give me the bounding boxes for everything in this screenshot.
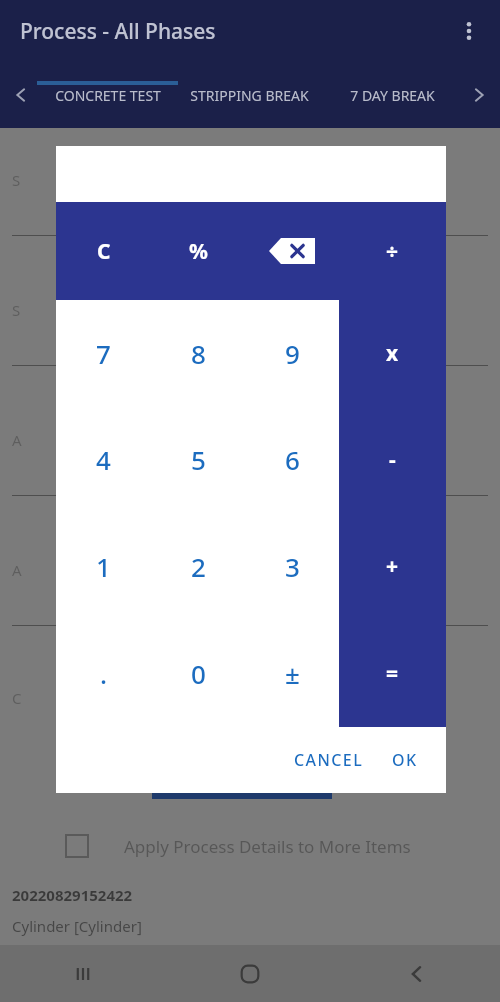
staticText: + [386,552,399,581]
staticText: 4 [96,442,111,477]
staticText: A [12,430,22,450]
button[interactable]: Back [333,945,500,1002]
button[interactable]: ÷ [339,202,446,300]
staticText: C [97,237,111,266]
staticText: % [189,237,208,266]
staticText: Apply Process Details to More Items [124,835,411,858]
button[interactable]: OK [378,739,432,781]
staticText: CONCRETE TEST [55,86,161,105]
staticText: Cylinder [Cylinder] [12,916,142,936]
staticText: OK [392,749,418,771]
staticText: CANCEL [294,749,364,771]
staticText: . [100,656,108,691]
button[interactable]: Apply Process Details to More Items [0,828,500,864]
button[interactable]: 5 [151,406,245,513]
button[interactable]: C [56,202,151,300]
staticText: STRIPPING BREAK [190,86,309,105]
button[interactable]: 3 [245,513,339,620]
staticText: = [386,659,399,688]
button[interactable]: 7 [56,300,151,406]
staticText: C [12,688,22,708]
button[interactable]: = [339,620,446,727]
button[interactable]: x [339,300,446,406]
staticText: ± [285,656,300,691]
button[interactable]: Home [166,945,333,1002]
staticText: 6 [285,442,300,477]
staticText: Process - All Phases [20,17,216,46]
staticText: 9 [285,336,300,371]
button[interactable]: . [56,620,151,727]
staticText: 2 [191,549,206,584]
button[interactable]: Backspace [245,202,339,300]
button[interactable]: 7 DAY BREAK [322,62,462,128]
button[interactable]: 6 [245,406,339,513]
staticText: 7 [96,336,111,371]
button[interactable]: 0 [151,620,245,727]
button[interactable]: 4 [56,406,151,513]
staticText: 20220829152422 [12,885,133,905]
staticText: 8 [191,336,206,371]
staticText: 3 [285,549,300,584]
staticText: 7 DAY BREAK [350,86,435,105]
button[interactable]: % [151,202,245,300]
button[interactable]: CONCRETE TEST [37,62,178,128]
button[interactable]: STRIPPING BREAK [186,62,313,128]
button[interactable]: + [339,513,446,620]
staticText: x [386,339,399,368]
button[interactable]: Previous tab [8,82,34,108]
staticText: 1 [96,549,111,584]
staticText: A [12,560,22,580]
button[interactable]: Next tab [466,82,492,108]
button[interactable]: - [339,406,446,513]
staticText: S [12,170,21,190]
button[interactable]: ± [245,620,339,727]
staticText: S [12,300,21,320]
button[interactable]: Recent apps [0,945,166,1002]
button[interactable]: More options [452,14,486,48]
staticText: 5 [191,442,206,477]
staticText: - [389,445,396,474]
staticText: 0 [191,656,206,691]
button[interactable]: 8 [151,300,245,406]
button[interactable]: 2 [151,513,245,620]
button[interactable]: 1 [56,513,151,620]
staticText: ÷ [386,237,399,266]
button[interactable]: 9 [245,300,339,406]
button[interactable]: CANCEL [280,739,378,781]
